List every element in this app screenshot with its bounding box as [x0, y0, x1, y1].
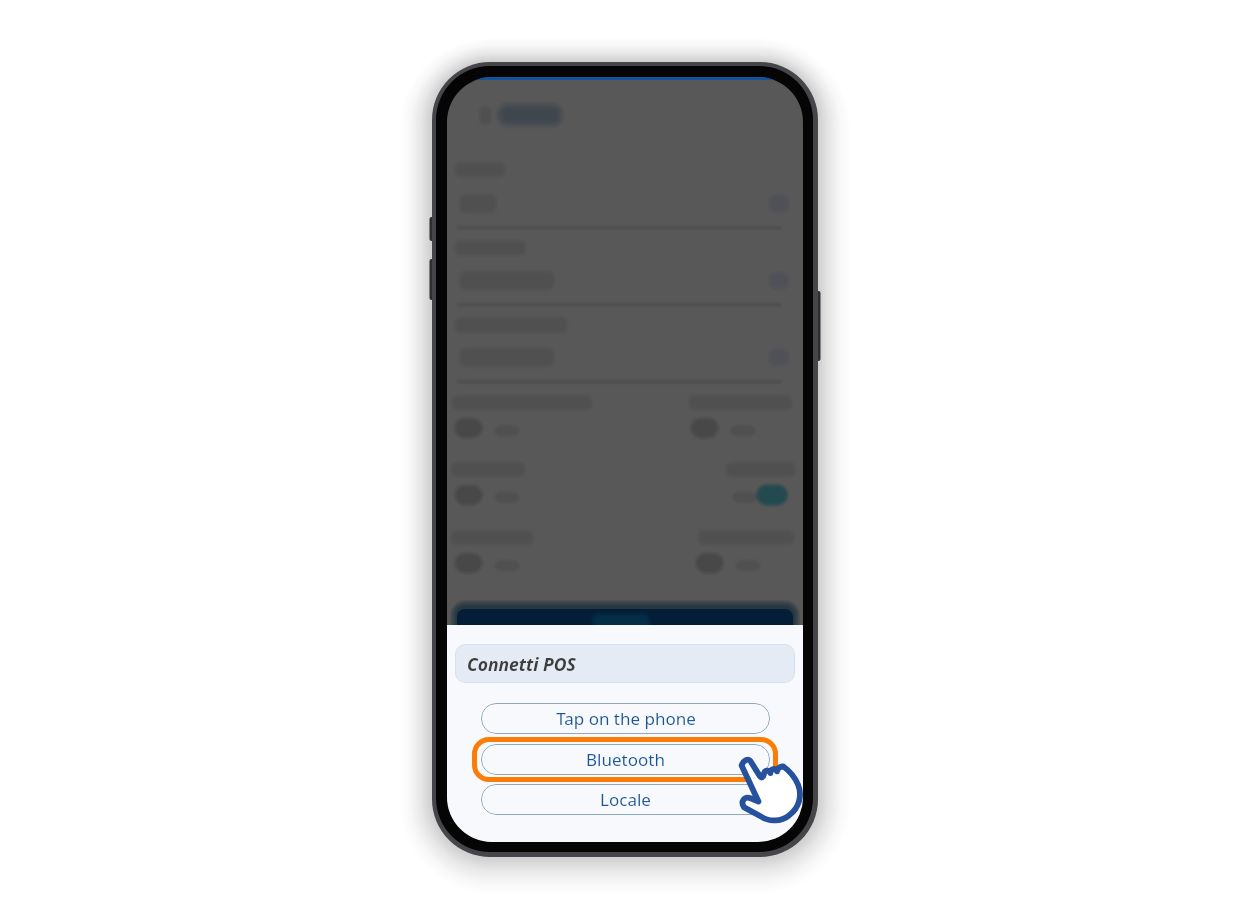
other: Tap on Bluetooth — [737, 755, 803, 827]
staticText: Tap on the phone — [556, 707, 696, 730]
button[interactable]: Locale — [481, 784, 770, 815]
button[interactable]: Connetti POS — [455, 644, 795, 683]
staticText: Locale — [600, 788, 651, 811]
button[interactable]: Tap on the phone — [481, 703, 770, 734]
button[interactable]: Bluetooth — [481, 744, 770, 775]
staticText: Connetti POS — [467, 652, 576, 676]
staticText: Bluetooth — [586, 748, 665, 771]
